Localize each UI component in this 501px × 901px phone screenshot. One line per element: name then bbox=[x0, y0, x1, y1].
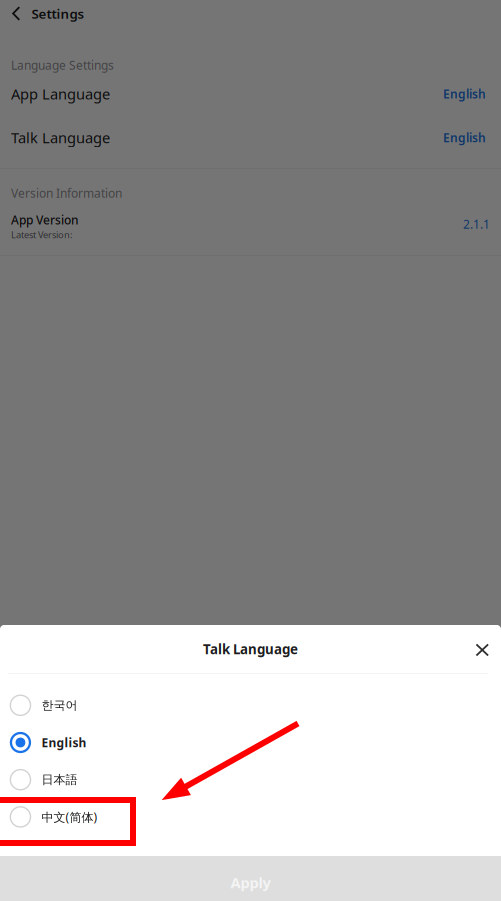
staticText: English bbox=[443, 86, 486, 102]
staticText: English bbox=[443, 130, 486, 145]
staticText: App Version bbox=[11, 212, 79, 228]
staticText: 中文(简体) bbox=[41, 809, 97, 825]
staticText: Version Information bbox=[11, 185, 122, 201]
staticText: 2.1.1 bbox=[463, 216, 490, 232]
button[interactable]: App Version bbox=[0, 200, 501, 255]
staticText: Apply bbox=[230, 873, 270, 892]
staticText: Latest Version: bbox=[11, 228, 73, 241]
staticText: Settings bbox=[31, 5, 84, 22]
staticText: Talk Language bbox=[11, 128, 110, 147]
button[interactable]: English bbox=[0, 724, 501, 761]
button[interactable]: App Language bbox=[0, 72, 501, 116]
staticText: 한국어 bbox=[41, 698, 77, 713]
staticText: English bbox=[41, 734, 86, 750]
button[interactable]: Close bbox=[467, 634, 497, 664]
staticText: App Language bbox=[11, 84, 110, 104]
button[interactable]: 한국어 bbox=[0, 687, 501, 724]
staticText: Language Settings bbox=[11, 57, 114, 73]
staticText: Talk Language bbox=[203, 640, 298, 658]
button[interactable]: Settings bbox=[0, 0, 84, 27]
button[interactable]: Talk Language bbox=[0, 116, 501, 159]
button[interactable]: 日本語 bbox=[0, 761, 501, 798]
staticText: 日本語 bbox=[41, 772, 77, 787]
button[interactable]: 中文(简体) bbox=[0, 798, 501, 835]
